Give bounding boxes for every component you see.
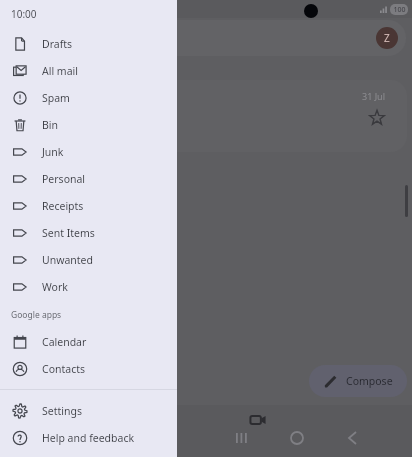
button[interactable]: Help and feedback <box>0 424 177 451</box>
button[interactable]: Spam <box>0 84 177 111</box>
staticText: Receipts <box>42 199 84 213</box>
button[interactable]: Compose <box>309 365 407 397</box>
button[interactable]: Star <box>369 110 385 126</box>
button[interactable]: Unwanted <box>0 246 177 273</box>
button[interactable]: All mail <box>0 57 177 84</box>
staticText: 31 Jul <box>362 90 385 102</box>
staticText: Z <box>384 31 390 45</box>
button[interactable]: Account <box>376 27 398 49</box>
staticText: Unwanted <box>42 253 93 267</box>
staticText: 100 <box>393 5 406 15</box>
staticText: Work <box>42 280 68 294</box>
staticText: Bin <box>42 118 59 132</box>
button[interactable]: Receipts <box>0 192 177 219</box>
staticText: Drafts <box>42 37 73 51</box>
staticText: Google apps <box>11 309 62 321</box>
button[interactable]: Account <box>6 20 406 56</box>
button[interactable]: Junk <box>0 138 177 165</box>
staticText: All mail <box>42 64 78 78</box>
button[interactable]: 31 Jul <box>5 80 407 152</box>
staticText: Junk <box>42 145 64 159</box>
staticText: Help and feedback <box>42 431 135 445</box>
button[interactable]: Work <box>0 273 177 300</box>
button[interactable]: Settings <box>0 397 177 424</box>
button[interactable]: Contacts <box>0 355 177 382</box>
button[interactable]: Bin <box>0 111 177 138</box>
staticText: Settings <box>42 404 82 418</box>
button[interactable]: Sent Items <box>0 219 177 246</box>
staticText: Spam <box>42 91 70 105</box>
staticText: Contacts <box>42 362 86 376</box>
staticText: Compose <box>346 374 393 388</box>
staticText: Sent Items <box>42 226 95 240</box>
button[interactable]: Drafts <box>0 30 177 57</box>
button[interactable]: Personal <box>0 165 177 192</box>
staticText: Calendar <box>42 335 87 349</box>
staticText: 10:00 <box>11 7 37 21</box>
staticText: Personal <box>42 172 86 186</box>
button[interactable]: Calendar <box>0 328 177 355</box>
button[interactable]: Meet <box>249 411 267 429</box>
